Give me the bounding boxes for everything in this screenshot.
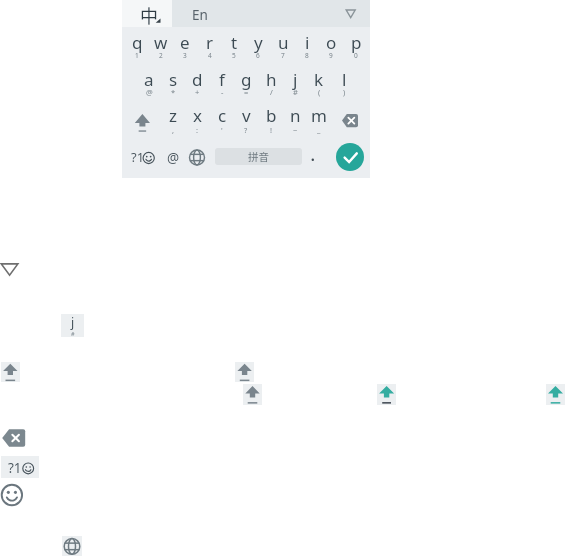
button[interactable] bbox=[271, 27, 295, 64]
button[interactable] bbox=[334, 102, 370, 139]
button[interactable] bbox=[61, 314, 84, 337]
staticText: g bbox=[241, 68, 252, 91]
staticText: r bbox=[206, 31, 214, 54]
button[interactable] bbox=[246, 27, 270, 64]
staticText: _ bbox=[317, 125, 321, 135]
staticText: * bbox=[171, 87, 176, 97]
staticText: w bbox=[154, 31, 168, 54]
button[interactable] bbox=[215, 148, 302, 165]
button[interactable] bbox=[338, 1, 364, 27]
button[interactable] bbox=[258, 102, 282, 139]
staticText: f bbox=[219, 68, 225, 91]
staticText: ' bbox=[221, 125, 223, 135]
staticText: 0 bbox=[354, 51, 358, 60]
button[interactable] bbox=[234, 102, 258, 139]
button[interactable] bbox=[243, 384, 262, 405]
button[interactable] bbox=[307, 102, 331, 139]
staticText: m bbox=[311, 104, 327, 127]
staticText: ?1 bbox=[8, 459, 22, 477]
button[interactable] bbox=[283, 102, 307, 139]
staticText: z bbox=[169, 104, 177, 127]
button[interactable] bbox=[173, 27, 197, 64]
staticText: @ bbox=[167, 149, 180, 167]
staticText: # bbox=[293, 87, 298, 97]
button[interactable] bbox=[1, 456, 39, 478]
staticText: q bbox=[132, 31, 143, 54]
button[interactable] bbox=[161, 102, 185, 139]
staticText: u bbox=[278, 31, 289, 54]
button[interactable] bbox=[234, 64, 258, 101]
button[interactable] bbox=[0, 483, 24, 507]
button[interactable] bbox=[197, 27, 221, 64]
staticText: a bbox=[144, 68, 154, 91]
staticText: 1 bbox=[135, 51, 139, 60]
button[interactable] bbox=[344, 27, 368, 64]
button[interactable] bbox=[185, 102, 209, 139]
staticText: v bbox=[242, 104, 251, 127]
staticText: @ bbox=[146, 87, 153, 97]
staticText: ~ bbox=[293, 125, 298, 135]
staticText: j bbox=[71, 314, 75, 331]
staticText: + bbox=[195, 87, 200, 97]
staticText: 2 bbox=[159, 51, 163, 60]
button[interactable] bbox=[124, 27, 148, 64]
staticText: , bbox=[172, 125, 175, 135]
staticText: En bbox=[192, 6, 208, 24]
staticText: = bbox=[244, 87, 249, 97]
staticText: p bbox=[351, 31, 362, 54]
staticText: x bbox=[193, 104, 202, 127]
button[interactable] bbox=[210, 102, 234, 139]
staticText: c bbox=[218, 104, 227, 127]
button[interactable] bbox=[0, 259, 20, 279]
button[interactable] bbox=[377, 384, 396, 405]
staticText: s bbox=[169, 68, 178, 91]
staticText: j bbox=[293, 68, 298, 91]
button[interactable] bbox=[302, 139, 324, 178]
staticText: d bbox=[192, 68, 203, 91]
button[interactable] bbox=[186, 139, 213, 178]
button[interactable] bbox=[122, 0, 370, 27]
button[interactable] bbox=[307, 64, 331, 101]
button[interactable] bbox=[149, 27, 173, 64]
button[interactable] bbox=[331, 64, 355, 101]
button[interactable] bbox=[210, 64, 234, 101]
button[interactable] bbox=[185, 64, 209, 101]
button[interactable] bbox=[258, 64, 282, 101]
staticText: k bbox=[314, 68, 324, 91]
staticText: ?1 bbox=[131, 148, 145, 166]
staticText: 4 bbox=[208, 51, 212, 60]
staticText: 3 bbox=[183, 51, 187, 60]
button[interactable] bbox=[122, 139, 159, 178]
staticText: t bbox=[231, 31, 238, 54]
staticText: 6 bbox=[256, 51, 260, 60]
button[interactable] bbox=[336, 143, 364, 171]
button[interactable] bbox=[137, 64, 161, 101]
staticText: 8 bbox=[305, 51, 309, 60]
staticText: n bbox=[290, 104, 301, 127]
button[interactable] bbox=[295, 27, 319, 64]
staticText: - bbox=[221, 87, 224, 97]
button[interactable] bbox=[1, 428, 26, 448]
button[interactable] bbox=[319, 27, 343, 64]
staticText: o bbox=[326, 31, 337, 54]
button[interactable] bbox=[283, 64, 307, 101]
button[interactable] bbox=[159, 139, 186, 178]
button[interactable] bbox=[1, 362, 20, 382]
button[interactable] bbox=[62, 536, 82, 556]
button[interactable] bbox=[122, 102, 158, 139]
staticText: h bbox=[266, 68, 277, 91]
staticText: 9 bbox=[329, 51, 333, 60]
staticText: : bbox=[196, 125, 199, 135]
button[interactable] bbox=[161, 64, 185, 101]
staticText: 中 bbox=[140, 2, 158, 28]
staticText: 7 bbox=[281, 51, 285, 60]
button[interactable] bbox=[235, 362, 254, 382]
staticText: b bbox=[266, 104, 277, 127]
button[interactable] bbox=[222, 27, 246, 64]
button[interactable] bbox=[122, 0, 172, 27]
staticText: / bbox=[270, 87, 273, 97]
staticText: 5 bbox=[232, 51, 236, 60]
staticText: 拼音 bbox=[248, 149, 269, 164]
staticText: y bbox=[254, 31, 263, 54]
button[interactable] bbox=[546, 384, 565, 405]
